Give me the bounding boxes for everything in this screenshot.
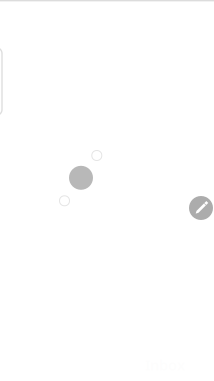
button[interactable]: Compose <box>189 196 213 220</box>
